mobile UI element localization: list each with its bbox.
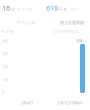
staticText: 3月4日 <box>21 100 33 105</box>
staticText: 268 <box>76 38 82 43</box>
staticText: 次 <box>10 7 15 12</box>
staticText: 200 <box>2 64 8 69</box>
staticText: 16 <box>2 3 10 13</box>
staticText: 运动时长 <box>53 29 69 34</box>
staticText: 平均心率 <box>16 20 36 26</box>
staticText: 消耗量 <box>67 29 79 34</box>
staticText: 千卡/分 <box>1 29 14 34</box>
staticText: 300 <box>2 51 8 56</box>
button[interactable]: 619 <box>46 3 90 13</box>
staticText: 619 <box>46 3 58 13</box>
staticText: 千卡 <box>58 7 67 12</box>
button[interactable]: 16 <box>0 3 45 13</box>
staticText: 消耗 <box>67 7 77 12</box>
staticText: 本月训练 <box>15 7 33 12</box>
staticText: 100 <box>2 77 8 82</box>
staticText: 0 <box>2 89 4 94</box>
button[interactable]: 268 千卡 <box>80 44 85 93</box>
staticText: 较上次更积极 <box>60 20 84 25</box>
staticText: 400 <box>2 38 8 43</box>
staticText: 5月1日/100km <box>58 100 83 105</box>
